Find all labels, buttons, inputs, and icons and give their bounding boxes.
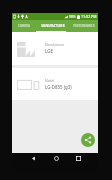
staticText: LGE bbox=[45, 48, 53, 54]
button[interactable]: PERFORMANCE bbox=[69, 20, 98, 32]
button[interactable]: Share bbox=[81, 133, 95, 147]
staticText: CAMERA bbox=[18, 24, 30, 28]
staticText: Manufacturer bbox=[45, 43, 65, 47]
staticText: 98% bbox=[69, 14, 76, 19]
staticText: 11:02 PM bbox=[81, 14, 97, 19]
button[interactable]: Model bbox=[12, 68, 98, 100]
button[interactable]: Recents bbox=[72, 153, 84, 163]
button[interactable]: CAMERA bbox=[12, 20, 36, 32]
button[interactable]: Manufacturer bbox=[12, 32, 98, 65]
button[interactable]: Home bbox=[50, 153, 62, 163]
staticText: MANUFACTURER bbox=[41, 24, 65, 28]
button[interactable]: Back bbox=[27, 153, 39, 163]
button[interactable]: MANUFACTURER bbox=[36, 20, 69, 32]
staticText: PERFORMANCE bbox=[73, 24, 95, 28]
staticText: LG-D855 (g3) bbox=[45, 84, 72, 90]
staticText: Model bbox=[45, 79, 54, 83]
